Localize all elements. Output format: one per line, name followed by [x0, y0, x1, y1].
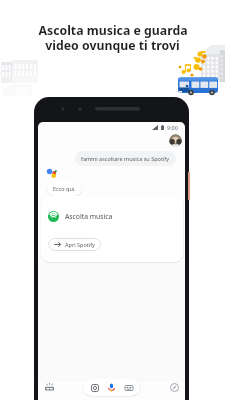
button[interactable]: Ecco qui. — [47, 181, 82, 196]
button[interactable]: Ascolta musica — [41, 196, 183, 262]
staticText: Ascolta musica e guarda — [38, 22, 188, 39]
button[interactable]: Microphone — [107, 383, 116, 392]
staticText: Apri Spotify — [65, 241, 95, 248]
button[interactable]: Apri Spotify — [48, 238, 101, 251]
staticText: Ascolta musica — [65, 212, 113, 221]
button[interactable]: Account — [169, 134, 182, 147]
staticText: video ovunque ti trovi — [45, 37, 180, 54]
button[interactable]: fammi ascoltare musica su Spotify — [75, 151, 176, 166]
button[interactable]: Keyboard — [124, 383, 133, 392]
button[interactable]: Snapshot — [42, 380, 56, 394]
button[interactable]: Explore — [167, 380, 181, 394]
staticText: 9:00 — [167, 124, 178, 131]
button[interactable]: Google Lens — [90, 383, 99, 392]
staticText: Ecco qui. — [53, 185, 76, 192]
staticText: fammi ascoltare musica su Spotify — [81, 155, 170, 162]
